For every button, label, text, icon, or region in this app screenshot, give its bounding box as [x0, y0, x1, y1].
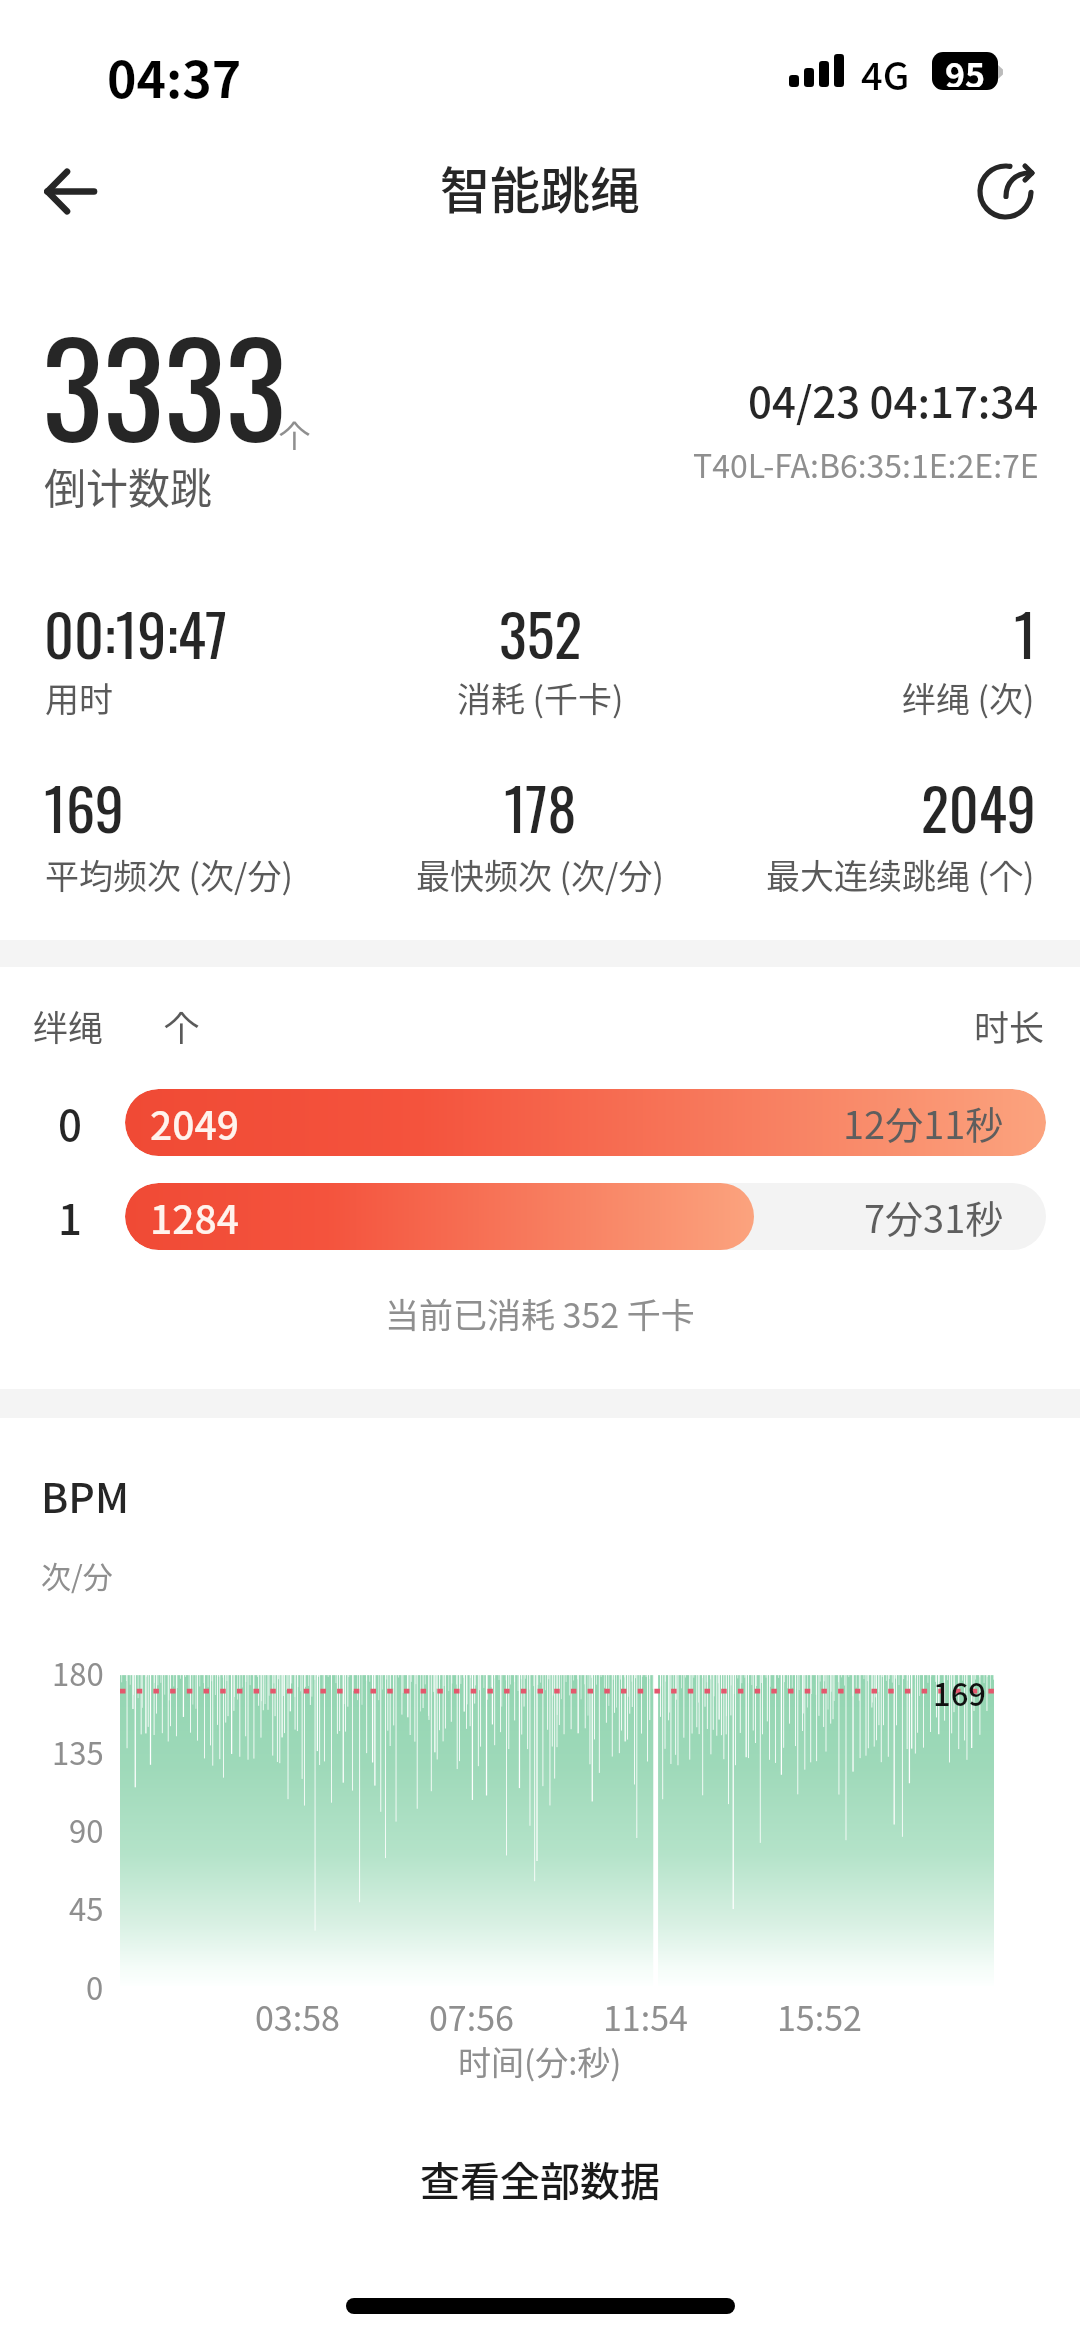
staticText: 169	[933, 1670, 987, 1715]
staticText: 03:58	[255, 1992, 340, 2041]
staticText: 个	[164, 1000, 200, 1051]
staticText: 00:19:47	[44, 590, 228, 676]
staticText: 169	[44, 764, 124, 850]
staticText: 07:56	[429, 1992, 514, 2041]
staticText: 0	[58, 1092, 82, 1153]
staticText: 绊绳 (次)	[902, 673, 1035, 722]
staticText: 178	[504, 764, 577, 850]
button[interactable]: 查看全部数据	[0, 2150, 1080, 2230]
staticText: 15:52	[777, 1992, 862, 2041]
staticText: 个	[279, 411, 310, 456]
button[interactable]: 2049	[125, 1089, 1046, 1156]
staticText: 用时	[45, 673, 113, 722]
staticText: 11:54	[603, 1992, 688, 2041]
staticText: 绊绳	[33, 1000, 104, 1051]
staticText: 0	[86, 1964, 104, 2009]
staticText: 消耗 (千卡)	[457, 673, 624, 722]
staticText: 7分31秒	[864, 1189, 1004, 1244]
staticText: 3333	[42, 289, 287, 479]
staticText: 2049	[921, 764, 1036, 850]
staticText: 平均频次 (次/分)	[45, 850, 293, 899]
staticText: 智能跳绳	[440, 151, 640, 223]
staticText: 352	[499, 590, 582, 676]
staticText: 当前已消耗 352 千卡	[385, 1289, 695, 1338]
staticText: 1284	[150, 1189, 239, 1245]
staticText: 最快频次 (次/分)	[416, 850, 664, 899]
staticText: 倒计数跳	[44, 455, 213, 516]
staticText: 12分11秒	[843, 1095, 1004, 1150]
staticText: 180	[52, 1650, 104, 1695]
staticText: T40L-FA:B6:35:1E:2E:7E	[693, 441, 1039, 487]
staticText: 45	[69, 1885, 104, 1930]
staticText: 135	[52, 1729, 104, 1774]
staticText: 查看全部数据	[420, 2150, 660, 2208]
staticText: 1	[58, 1186, 82, 1247]
button[interactable]: Share	[961, 147, 1049, 235]
staticText: 2049	[150, 1095, 239, 1151]
staticText: 时间(分:秒)	[458, 2037, 622, 2085]
staticText: 90	[69, 1807, 104, 1852]
staticText: BPM	[41, 1465, 129, 1524]
staticText: 最大连续跳绳 (个)	[766, 850, 1035, 899]
button[interactable]: Back	[25, 147, 113, 235]
staticText: 1	[1014, 590, 1036, 676]
staticText: 04:37	[107, 40, 242, 112]
button[interactable]: 1284	[125, 1183, 1046, 1250]
staticText: 04/23 04:17:34	[748, 369, 1039, 430]
staticText: 4G	[861, 46, 910, 101]
staticText: 95	[945, 52, 986, 87]
staticText: 次/分	[41, 1553, 113, 1596]
staticText: 时长	[974, 1000, 1045, 1051]
